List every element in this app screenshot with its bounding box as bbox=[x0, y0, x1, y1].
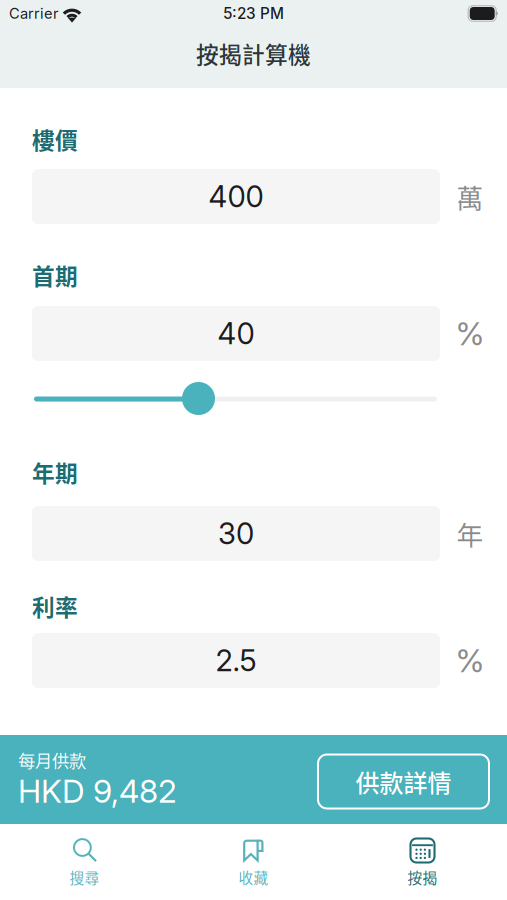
staticText: 利率 bbox=[32, 590, 78, 622]
staticText: Carrier bbox=[9, 5, 59, 22]
staticText: 搜尋 bbox=[69, 866, 99, 888]
staticText: 按揭 bbox=[407, 866, 437, 888]
staticText: 400 bbox=[208, 179, 263, 214]
button[interactable]: 供款詳情 bbox=[318, 754, 489, 808]
staticText: 萬 bbox=[456, 177, 483, 216]
staticText: 首期 bbox=[32, 259, 78, 291]
button[interactable]: 搜尋 bbox=[0, 824, 169, 900]
staticText: 30 bbox=[218, 516, 254, 551]
staticText: 供款詳情 bbox=[355, 764, 451, 799]
staticText: 40 bbox=[217, 316, 254, 351]
staticText: HKD 9,482 bbox=[18, 772, 177, 810]
button[interactable]: 收藏 bbox=[169, 824, 338, 900]
staticText: 5:23 PM bbox=[223, 4, 284, 23]
staticText: 每月供款 bbox=[18, 747, 86, 773]
staticText: 按揭計算機 bbox=[196, 37, 311, 70]
staticText: 年 bbox=[456, 514, 483, 553]
staticText: 收藏 bbox=[238, 866, 268, 888]
staticText: 樓價 bbox=[32, 123, 78, 155]
staticText: 年期 bbox=[32, 456, 78, 488]
button[interactable]: 按揭 bbox=[338, 824, 507, 900]
staticText: % bbox=[455, 641, 484, 680]
staticText: 2.5 bbox=[215, 643, 256, 678]
staticText: % bbox=[455, 314, 484, 353]
